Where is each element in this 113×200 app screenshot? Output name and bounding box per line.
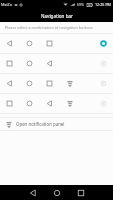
- staticText: Open notification panel: [16, 121, 65, 127]
- button[interactable]: [0, 34, 113, 53]
- staticText: 12:25 PM: [95, 2, 111, 7]
- staticText: Please select a combination of navigatio…: [5, 25, 93, 30]
- button[interactable]: [0, 74, 113, 93]
- staticText: 69%: [77, 2, 85, 7]
- button[interactable]: Back: [25, 185, 40, 200]
- staticText: Navigation bar: [41, 13, 73, 19]
- button[interactable]: Home: [49, 185, 64, 200]
- button[interactable]: Recent apps: [73, 185, 88, 200]
- button[interactable]: Open notification panel: [0, 118, 113, 130]
- staticText: MeiZu: [1, 2, 13, 7]
- button[interactable]: [0, 94, 113, 113]
- button[interactable]: [0, 54, 113, 73]
